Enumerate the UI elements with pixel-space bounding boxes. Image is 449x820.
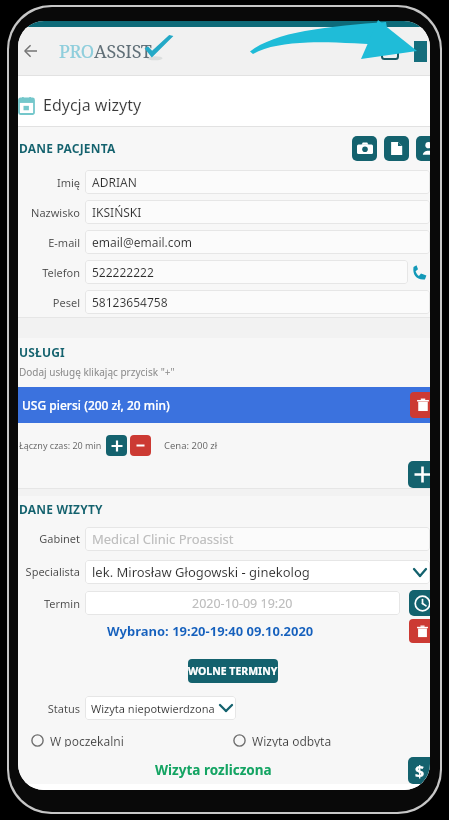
button[interactable]: Increase time — [106, 435, 127, 456]
staticText: 58123654758 — [92, 294, 168, 310]
button[interactable]: email@email.com — [85, 230, 430, 254]
staticText: Status — [18, 701, 80, 716]
button[interactable]: 522222222 — [85, 260, 408, 284]
staticText: ASSIST — [94, 39, 152, 64]
staticText: Nazwisko — [18, 205, 80, 220]
staticText: ADRIAN — [92, 174, 137, 190]
staticText: Pesel — [18, 295, 80, 310]
button[interactable]: More options — [406, 37, 430, 65]
staticText: Specialista — [18, 564, 80, 579]
staticText: Wybrano: 19:20-19:40 09.10.2020 — [107, 622, 314, 640]
staticText: email@email.com — [92, 234, 193, 250]
button[interactable]: Medical Clinic Proassist — [85, 527, 430, 551]
staticText: USG piersi (200 zł, 20 min) — [22, 397, 170, 413]
staticText: 522222222 — [92, 264, 154, 280]
staticText: Łączny czas: 20 min — [19, 439, 102, 451]
button[interactable]: ADRIAN — [85, 170, 430, 194]
button[interactable]: Patient card — [416, 136, 430, 161]
staticText: Edycja wizyty — [43, 94, 142, 116]
button[interactable]: 2020-10-09 19:20 — [85, 591, 400, 615]
staticText: lek. Mirosław Głogowski - ginekolog — [92, 563, 310, 581]
staticText: Gabinet — [18, 531, 80, 546]
button[interactable]: Remove term — [409, 619, 430, 643]
button[interactable]: IKSIŃSKI — [85, 200, 430, 224]
staticText: $ — [415, 760, 425, 782]
button[interactable]: Add service — [408, 461, 430, 488]
staticText: PRO — [59, 39, 94, 64]
staticText: Telefon — [18, 265, 80, 280]
staticText: DANE WIZYTY — [19, 501, 103, 517]
staticText: Medical Clinic Proassist — [92, 530, 234, 548]
button[interactable]: Wizyta niepotwierdzona — [85, 696, 236, 720]
button[interactable]: Take photo — [352, 136, 377, 161]
button[interactable]: 58123654758 — [85, 290, 430, 314]
staticText: DANE PACJENTA — [19, 140, 116, 156]
staticText: IKSIŃSKI — [92, 204, 142, 220]
staticText: W poczekalni — [50, 733, 124, 747]
button[interactable]: Back — [18, 36, 45, 66]
button[interactable]: Pick time — [409, 590, 430, 616]
staticText: WOLNE TERMINY — [188, 664, 278, 678]
button[interactable]: Wizyta odbyta — [231, 732, 334, 748]
staticText: Wizyta rozliczona — [155, 761, 272, 779]
button[interactable]: W poczekalni — [29, 732, 126, 748]
button[interactable]: Call — [408, 260, 430, 284]
button[interactable]: WOLNE TERMINY — [188, 659, 278, 683]
staticText: Cena: 200 zł — [164, 439, 218, 452]
staticText: 2020-10-09 19:20 — [192, 595, 293, 612]
staticText: Imię — [18, 175, 80, 190]
button[interactable]: Delete service — [410, 392, 430, 418]
staticText: Wizyta odbyta — [252, 733, 332, 747]
button[interactable]: Payment — [408, 757, 430, 784]
staticText: Wizyta niepotwierdzona — [91, 701, 215, 716]
button[interactable]: Save — [374, 35, 406, 67]
staticText: Dodaj usługę klikając przycisk "+" — [19, 365, 175, 379]
button[interactable]: Decrease time — [130, 435, 151, 456]
staticText: E-mail — [18, 235, 80, 250]
button[interactable]: Documents — [384, 136, 409, 161]
staticText: USŁUGI — [19, 344, 65, 360]
button[interactable]: lek. Mirosław Głogowski - ginekolog — [85, 560, 430, 584]
staticText: Termin — [18, 596, 80, 611]
